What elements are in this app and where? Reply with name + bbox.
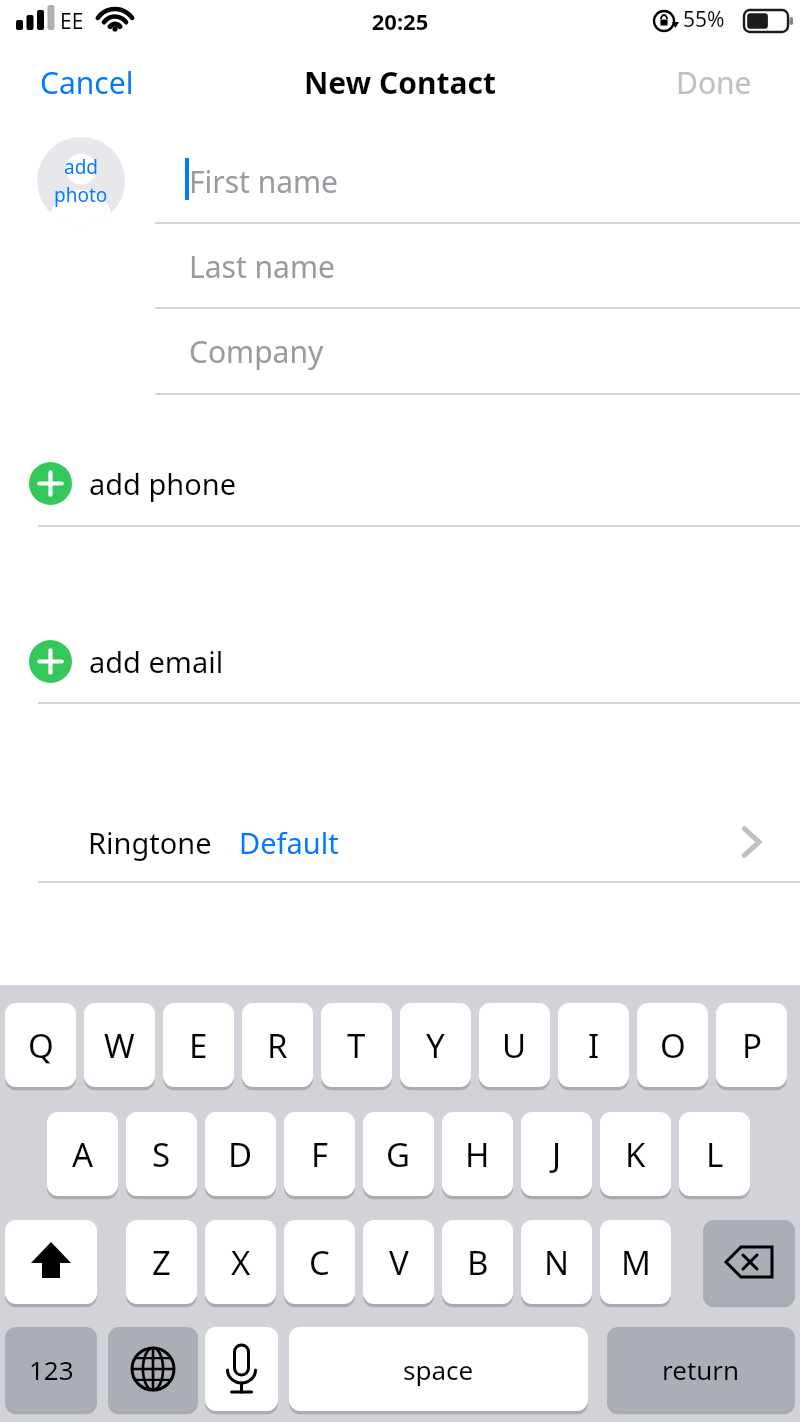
staticText: Z bbox=[152, 1240, 171, 1285]
staticText: 123 bbox=[29, 1352, 74, 1387]
button[interactable]: P bbox=[716, 1003, 787, 1087]
button[interactable]: space bbox=[289, 1327, 588, 1411]
staticText: Cancel bbox=[40, 62, 134, 103]
staticText: return bbox=[662, 1352, 740, 1387]
staticText: N bbox=[544, 1240, 570, 1285]
staticText: add bbox=[64, 154, 99, 180]
staticText: W bbox=[104, 1023, 135, 1068]
staticText: B bbox=[467, 1240, 489, 1285]
staticText: S bbox=[152, 1132, 171, 1177]
staticText: V bbox=[389, 1240, 409, 1285]
button[interactable]: L bbox=[679, 1112, 750, 1196]
staticText: space bbox=[403, 1352, 474, 1387]
button[interactable]: Last name bbox=[155, 222, 800, 307]
staticText: R bbox=[267, 1023, 288, 1068]
staticText: 20:25 bbox=[0, 6, 800, 36]
staticText: U bbox=[502, 1023, 527, 1068]
staticText: Q bbox=[28, 1023, 54, 1068]
staticText: First name bbox=[189, 161, 339, 202]
button[interactable]: Y bbox=[400, 1003, 471, 1087]
button[interactable]: Company bbox=[155, 307, 800, 392]
button[interactable]: add email bbox=[0, 619, 800, 703]
button[interactable]: Z bbox=[126, 1220, 197, 1304]
button[interactable]: C bbox=[284, 1220, 355, 1304]
staticText: T bbox=[347, 1023, 366, 1068]
button[interactable]: A bbox=[47, 1112, 118, 1196]
button[interactable]: S bbox=[126, 1112, 197, 1196]
staticText: New Contact bbox=[0, 62, 800, 103]
button[interactable]: U bbox=[479, 1003, 550, 1087]
staticText: Ringtone bbox=[88, 823, 212, 862]
staticText: I bbox=[588, 1023, 600, 1068]
staticText: A bbox=[72, 1132, 94, 1177]
button[interactable]: N bbox=[521, 1220, 592, 1304]
staticText: C bbox=[309, 1240, 330, 1285]
staticText: H bbox=[465, 1132, 490, 1177]
staticText: O bbox=[660, 1023, 686, 1068]
button[interactable]: X bbox=[205, 1220, 276, 1304]
button[interactable]: D bbox=[205, 1112, 276, 1196]
button[interactable]: M bbox=[600, 1220, 671, 1304]
button[interactable]: Q bbox=[5, 1003, 76, 1087]
button[interactable]: E bbox=[163, 1003, 234, 1087]
staticText: G bbox=[386, 1132, 411, 1177]
button[interactable]: H bbox=[442, 1112, 513, 1196]
button[interactable]: K bbox=[600, 1112, 671, 1196]
staticText: J bbox=[552, 1132, 562, 1177]
staticText: 55% bbox=[683, 5, 725, 34]
staticText: D bbox=[228, 1132, 253, 1177]
staticText: Y bbox=[426, 1023, 445, 1068]
button[interactable]: J bbox=[521, 1112, 592, 1196]
staticText: photo bbox=[54, 182, 108, 208]
button[interactable]: add phone bbox=[0, 441, 800, 525]
staticText: add email bbox=[89, 642, 224, 681]
staticText: F bbox=[311, 1132, 329, 1177]
button[interactable]: 123 bbox=[5, 1327, 97, 1411]
staticText: EE bbox=[60, 7, 84, 36]
button[interactable]: First name bbox=[155, 137, 800, 222]
button[interactable]: Shift bbox=[5, 1220, 97, 1304]
button[interactable]: B bbox=[442, 1220, 513, 1304]
button[interactable]: F bbox=[284, 1112, 355, 1196]
staticText: X bbox=[231, 1240, 251, 1285]
button[interactable]: Backspace bbox=[703, 1220, 795, 1304]
staticText: L bbox=[706, 1132, 724, 1177]
button[interactable]: I bbox=[558, 1003, 629, 1087]
button[interactable]: Done bbox=[660, 56, 768, 109]
button[interactable]: Change keyboard language bbox=[108, 1327, 198, 1411]
button[interactable]: V bbox=[363, 1220, 434, 1304]
button[interactable]: Dictation bbox=[205, 1327, 278, 1411]
button[interactable]: Ringtone bbox=[0, 800, 800, 882]
button[interactable]: R bbox=[242, 1003, 313, 1087]
button[interactable]: return bbox=[607, 1327, 795, 1411]
staticText: K bbox=[625, 1132, 646, 1177]
staticText: E bbox=[189, 1023, 208, 1068]
button[interactable]: O bbox=[637, 1003, 708, 1087]
button[interactable]: W bbox=[84, 1003, 155, 1087]
staticText: Last name bbox=[189, 246, 335, 287]
staticText: P bbox=[742, 1023, 762, 1068]
button[interactable]: Add photo bbox=[37, 137, 125, 225]
staticText: add phone bbox=[89, 464, 237, 503]
staticText: Company bbox=[189, 331, 324, 372]
staticText: Done bbox=[676, 62, 752, 103]
staticText: M bbox=[621, 1240, 651, 1285]
button[interactable]: Cancel bbox=[22, 56, 152, 109]
button[interactable]: T bbox=[321, 1003, 392, 1087]
button[interactable]: G bbox=[363, 1112, 434, 1196]
staticText: Default bbox=[239, 823, 339, 862]
